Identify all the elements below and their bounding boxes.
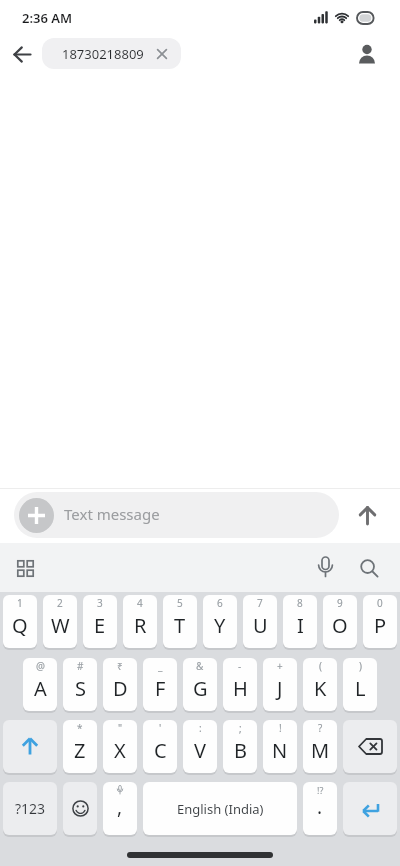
button[interactable]: ,	[103, 782, 137, 835]
staticText: D	[113, 675, 128, 702]
button[interactable]	[343, 782, 397, 835]
button[interactable]	[8, 551, 42, 585]
staticText: V	[194, 737, 206, 764]
staticText: &	[196, 659, 204, 673]
staticText: C	[154, 737, 167, 764]
button[interactable]: English (India)	[143, 782, 297, 835]
button[interactable]: (	[303, 658, 337, 711]
button[interactable]: 5	[163, 595, 197, 648]
button[interactable]: *	[63, 720, 97, 773]
staticText: J	[277, 675, 283, 702]
button[interactable]: &	[183, 658, 217, 711]
button[interactable]: 2	[43, 595, 77, 648]
staticText: ,	[117, 794, 123, 820]
button[interactable]: !	[263, 720, 297, 773]
staticText: G	[193, 675, 208, 702]
staticText: !?	[317, 784, 324, 796]
staticText: ₹	[117, 659, 123, 673]
button[interactable]: 6	[203, 595, 237, 648]
staticText: Text message	[64, 504, 160, 524]
staticText: !	[279, 721, 282, 735]
staticText: ;	[239, 721, 242, 735]
button[interactable]: @	[23, 658, 57, 711]
staticText: S	[75, 675, 86, 702]
staticText: 8	[297, 596, 303, 610]
staticText: H	[233, 675, 248, 702]
button[interactable]: ;	[223, 720, 257, 773]
staticText: E	[94, 612, 106, 639]
staticText: K	[314, 675, 327, 702]
button[interactable]: 7	[243, 595, 277, 648]
button[interactable]: 0	[363, 595, 397, 648]
staticText: N	[272, 737, 288, 764]
button[interactable]	[343, 720, 397, 773]
button[interactable]: _	[143, 658, 177, 711]
staticText: 6	[217, 596, 223, 610]
button[interactable]: 4	[123, 595, 157, 648]
button[interactable]: Text message	[14, 492, 339, 538]
staticText: R	[134, 612, 147, 639]
staticText: :	[199, 721, 202, 735]
staticText: #	[77, 659, 84, 673]
staticText: A	[34, 675, 47, 702]
button[interactable]: )	[343, 658, 377, 711]
button[interactable]: #	[63, 658, 97, 711]
staticText: .	[317, 794, 323, 820]
staticText: (	[319, 659, 322, 673]
staticText: Q	[12, 612, 28, 639]
button[interactable]: '	[143, 720, 177, 773]
staticText: 3	[97, 596, 103, 610]
button[interactable]	[351, 38, 383, 70]
staticText: -	[238, 659, 242, 673]
staticText: ?123	[15, 799, 46, 818]
staticText: English (India)	[177, 800, 264, 818]
staticText: _	[158, 659, 163, 673]
staticText: U	[253, 612, 268, 639]
staticText: +	[277, 659, 283, 673]
staticText: Y	[214, 612, 226, 639]
staticText: P	[374, 612, 387, 639]
staticText: M	[311, 737, 330, 764]
button[interactable]	[63, 782, 97, 835]
staticText: 0	[377, 596, 383, 610]
staticText: B	[234, 737, 247, 764]
staticText: 7	[257, 596, 263, 610]
staticText: 18730218809	[62, 45, 144, 63]
button[interactable]: "	[103, 720, 137, 773]
button[interactable]	[351, 499, 383, 531]
button[interactable]: 3	[83, 595, 117, 648]
staticText: @	[36, 659, 45, 673]
staticText: L	[355, 675, 366, 702]
button[interactable]	[6, 38, 38, 70]
button[interactable]	[3, 720, 57, 773]
staticText: 5	[177, 596, 183, 610]
button[interactable]	[352, 551, 386, 585]
staticText: 2:36 AM	[22, 9, 73, 27]
button[interactable]: :	[183, 720, 217, 773]
staticText: F	[155, 675, 166, 702]
button[interactable]: +	[263, 658, 297, 711]
button[interactable]: ?123	[3, 782, 57, 835]
button[interactable]: 8	[283, 595, 317, 648]
staticText: )	[359, 659, 362, 673]
button[interactable]: 9	[323, 595, 357, 648]
button[interactable]	[308, 551, 342, 585]
button[interactable]: !?	[303, 782, 337, 835]
staticText: 2	[57, 596, 63, 610]
button[interactable]: -	[223, 658, 257, 711]
staticText: 4	[137, 596, 143, 610]
staticText: *	[77, 721, 83, 735]
staticText: Z	[74, 737, 86, 764]
staticText: I	[297, 612, 304, 639]
staticText: 1	[17, 596, 23, 610]
button[interactable]: 1	[3, 595, 37, 648]
staticText: ?	[318, 721, 323, 735]
button[interactable]: ?	[303, 720, 337, 773]
button[interactable]: ₹	[103, 658, 137, 711]
staticText: 9	[337, 596, 343, 610]
staticText: T	[174, 612, 186, 639]
button[interactable]: 18730218809	[42, 38, 181, 69]
staticText: '	[159, 721, 162, 735]
staticText: "	[118, 721, 123, 735]
staticText: O	[332, 612, 348, 639]
